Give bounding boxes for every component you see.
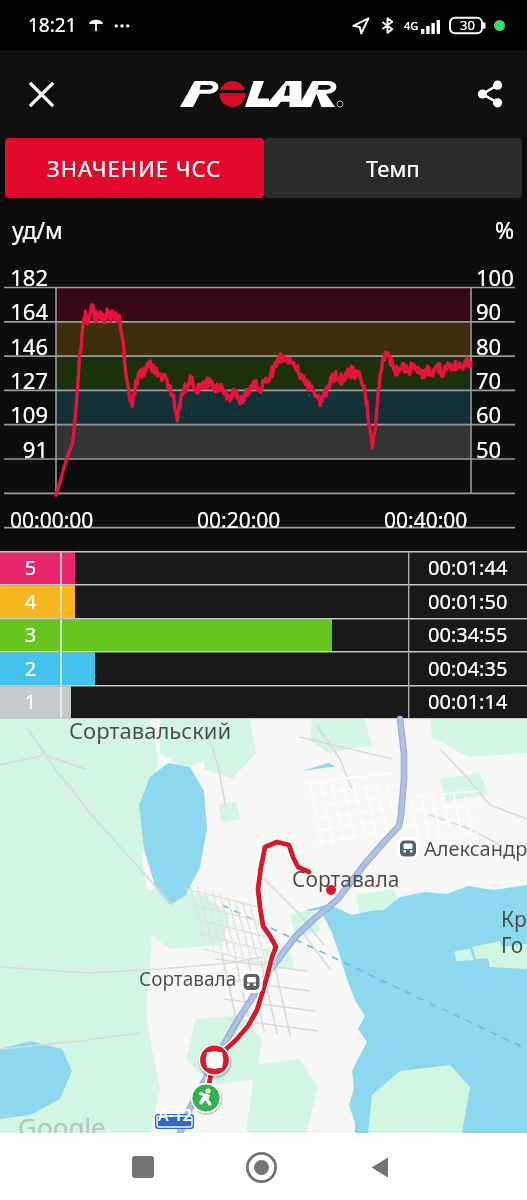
- staticText: 100: [476, 262, 524, 292]
- staticText: 4G: [404, 18, 419, 33]
- staticText: 2: [0, 655, 61, 682]
- staticText: 00:00:00: [10, 506, 94, 535]
- staticText: 80: [476, 331, 524, 361]
- staticText: Google: [18, 1109, 106, 1144]
- button[interactable]: Share: [469, 73, 511, 115]
- staticText: Сортавала: [139, 966, 237, 992]
- staticText: 1: [0, 688, 61, 715]
- staticText: Темп: [366, 153, 420, 183]
- staticText: 127: [0, 365, 48, 395]
- button[interactable]: 5: [0, 551, 527, 584]
- button[interactable]: Back: [355, 1143, 403, 1191]
- staticText: 60: [476, 399, 524, 429]
- staticText: 00:40:00: [384, 506, 468, 535]
- button[interactable]: 2: [0, 651, 527, 685]
- staticText: 50: [476, 434, 524, 464]
- button[interactable]: 3: [0, 618, 527, 651]
- staticText: Сортавала: [292, 865, 400, 894]
- button[interactable]: 1: [0, 685, 527, 718]
- staticText: 00:01:44: [428, 554, 508, 581]
- staticText: Кр: [501, 905, 527, 934]
- staticText: 5: [0, 554, 61, 581]
- button[interactable]: Home: [237, 1143, 285, 1191]
- staticText: уд/м: [12, 214, 63, 245]
- button[interactable]: Close: [20, 73, 62, 115]
- staticText: Сортавальский: [69, 715, 232, 745]
- staticText: ЗНАЧЕНИЕ ЧСС: [47, 153, 222, 183]
- staticText: 18:21: [28, 12, 77, 38]
- staticText: 3: [0, 621, 61, 648]
- staticText: 70: [476, 365, 524, 395]
- staticText: 90: [476, 296, 524, 326]
- staticText: Александры: [424, 835, 527, 862]
- button[interactable]: 4: [0, 584, 527, 618]
- staticText: 30: [460, 16, 475, 34]
- button[interactable]: ЗНАЧЕНИЕ ЧСС: [5, 138, 264, 198]
- staticText: 4: [0, 588, 61, 615]
- staticText: 00:20:00: [197, 506, 281, 535]
- staticText: 146: [0, 331, 48, 361]
- staticText: %: [495, 214, 515, 245]
- staticText: 91: [0, 434, 48, 464]
- staticText: A-121: [158, 1104, 202, 1126]
- staticText: 109: [0, 399, 48, 429]
- button[interactable]: Recents: [119, 1143, 167, 1191]
- button[interactable]: Route map: [0, 719, 527, 1133]
- staticText: 00:01:14: [428, 688, 508, 715]
- staticText: 00:04:35: [428, 655, 508, 682]
- staticText: 00:01:50: [428, 588, 508, 615]
- staticText: 164: [0, 296, 48, 326]
- staticText: 00:34:55: [428, 621, 508, 648]
- staticText: Го: [501, 931, 524, 960]
- button[interactable]: Темп: [264, 138, 522, 198]
- staticText: 182: [0, 262, 48, 292]
